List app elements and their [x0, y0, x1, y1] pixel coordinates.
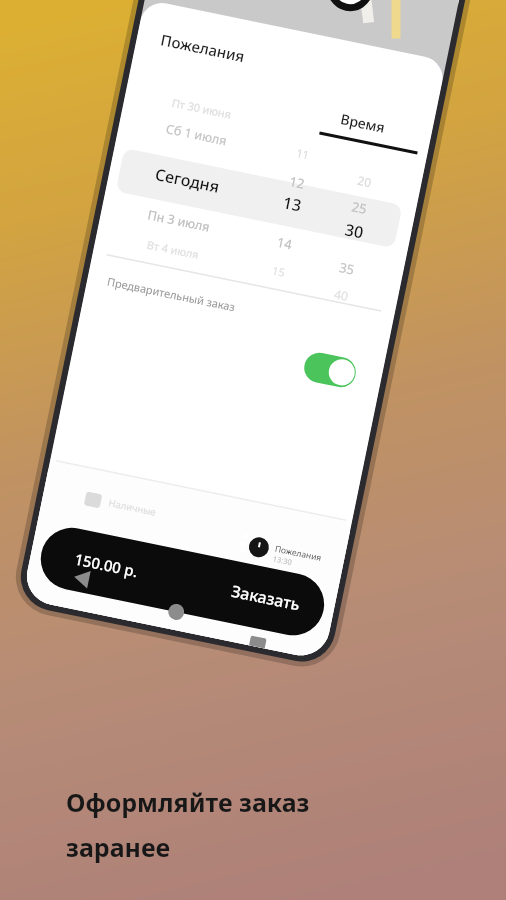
- button[interactable]: Оформляйте заказ заранее: [0, 0, 506, 900]
